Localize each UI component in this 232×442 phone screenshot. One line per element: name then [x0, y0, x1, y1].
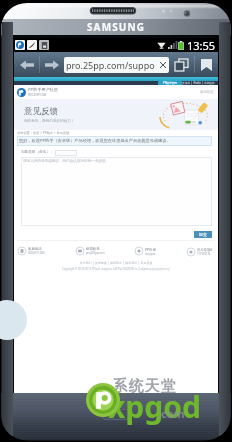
- button[interactable]: 邮箱联系: [76, 247, 105, 255]
- button[interactable]: 客服电话: [18, 247, 45, 255]
- staticText: PP助手官网: [163, 81, 178, 85]
- staticText: PP助手用户社区: [28, 87, 59, 93]
- button[interactable]: [55, 150, 77, 156]
- button[interactable]: 官方QQ群: [187, 247, 213, 256]
- staticText: xpgod: [108, 386, 201, 427]
- button[interactable]: 安卓版 | iPad版 | 手机软件: [182, 81, 215, 85]
- staticText: 当前位置：首页 > PP助手 > 意见反馈: [17, 131, 70, 135]
- staticText: 官方QQ群: [197, 247, 213, 252]
- staticText: 客服电话: [28, 247, 42, 251]
- staticText: 您的意见，是我们进步的动力！: [24, 119, 75, 124]
- button[interactable]: 提交: [194, 231, 212, 238]
- button[interactable]: Forward: [40, 52, 64, 77]
- staticText: 您好，欢迎PP助手（安卓版）产品经理，欢迎您在这里提出产品改善意见或建议。: [19, 138, 171, 144]
- staticText: pro.25pp.com/suppo: [66, 59, 155, 71]
- staticText: 提交: [199, 232, 207, 237]
- button[interactable]: 返回首页: [200, 90, 214, 94]
- staticText: PP官博: [145, 247, 156, 252]
- staticText: 400-0571-000: [28, 251, 45, 255]
- staticText: 新浪微博: [145, 252, 156, 255]
- staticText: 邮箱联系: [86, 247, 100, 251]
- staticText: 问题类型（必选）：: [21, 150, 54, 155]
- button[interactable]: Bookmarks: [195, 52, 218, 77]
- button[interactable]: Back: [14, 52, 39, 77]
- staticText: Copyright © 2010-2015 PP助手 版权所有 闽ICP备120…: [14, 267, 218, 271]
- button[interactable]: 请输入您的意见或建议，我们会认真对待每一条反馈。: [21, 157, 212, 226]
- staticText: pro@25pp.com: [86, 251, 105, 255]
- staticText: 13:55: [187, 38, 216, 52]
- staticText: 关于我们 | 友情链接 | 诚聘英才 | 联系我们 | 意见反馈: [14, 261, 218, 265]
- staticText: PRO.25PP.COM: [28, 93, 47, 97]
- staticText: SAMSUNG: [87, 20, 145, 34]
- staticText: 安卓版 | iPad版 | 手机软件: [182, 81, 215, 85]
- staticText: .com: [158, 406, 185, 421]
- staticText: 请输入您的意见或建议，我们会认真对待每一条反馈。: [23, 159, 110, 164]
- button[interactable]: pro.25pp.com/suppo: [64, 57, 169, 73]
- button[interactable]: PP官博: [135, 247, 156, 255]
- staticText: 意见反馈: [24, 106, 58, 117]
- button[interactable]: Tabs: [169, 52, 194, 77]
- staticText: 系统天堂: [112, 377, 176, 396]
- button[interactable]: PP助手官网: [158, 81, 182, 85]
- staticText: 171902178: [197, 252, 211, 256]
